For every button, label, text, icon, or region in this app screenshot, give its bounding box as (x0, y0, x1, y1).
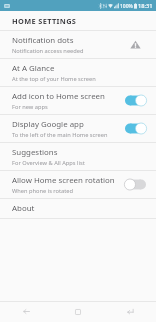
staticText: Display Google app (12, 119, 84, 130)
button[interactable]: Suggestions (0, 143, 156, 170)
button[interactable]: Allow Home screen rotation (0, 171, 156, 198)
staticText: When phone is rotated (12, 187, 74, 195)
staticText: Add icon to Home screen (12, 91, 105, 102)
staticText: About (12, 203, 35, 214)
button[interactable]: About (0, 199, 156, 218)
staticText: HOME SETTINGS (12, 16, 77, 26)
staticText: To the left of the main Home screen (12, 131, 108, 139)
staticText: Notification dots (12, 35, 74, 46)
button[interactable]: Add icon to Home screen (0, 87, 156, 114)
button[interactable]: Notification dots (0, 31, 156, 58)
button[interactable]: Home (52, 301, 104, 322)
staticText: Suggestions (12, 147, 58, 158)
button[interactable]: Toggle off (125, 179, 146, 190)
button[interactable]: Warning (130, 39, 141, 50)
button[interactable]: Display Google app (0, 115, 156, 142)
staticText: 100% (120, 3, 133, 10)
staticText: At A Glance (12, 63, 55, 74)
button[interactable]: Toggle on (125, 95, 146, 106)
staticText: For Overview & All Apps list (12, 159, 85, 167)
button[interactable]: Recents (104, 301, 156, 322)
staticText: For new apps (12, 103, 48, 111)
button[interactable]: Toggle on (125, 123, 146, 134)
button[interactable]: Back (0, 301, 52, 322)
staticText: 18:31 (138, 2, 153, 10)
staticText: Notification access needed (12, 47, 84, 55)
staticText: Allow Home screen rotation (12, 175, 115, 186)
button[interactable]: At A Glance (0, 59, 156, 86)
staticText: At the top of your Home screen (12, 75, 96, 83)
